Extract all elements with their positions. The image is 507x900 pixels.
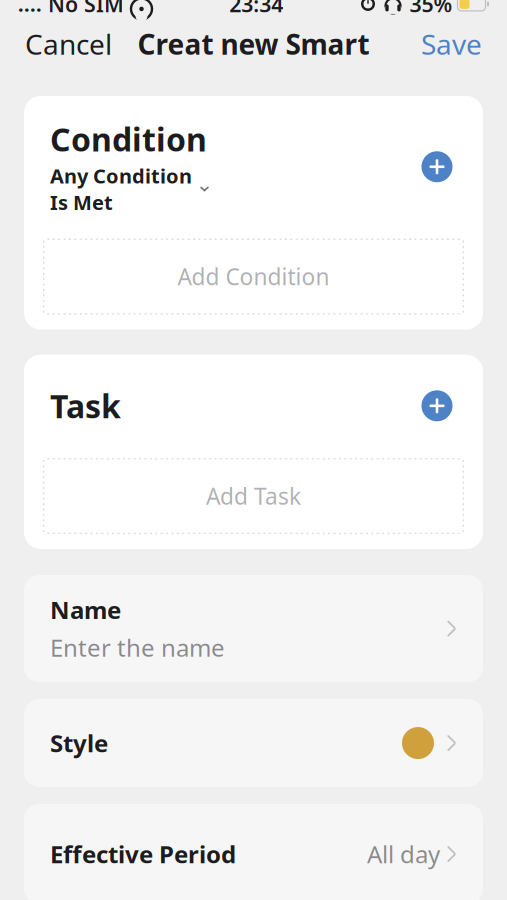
staticText: Add Task xyxy=(206,481,301,511)
staticText: No SIM xyxy=(48,0,124,18)
button[interactable]: Save xyxy=(401,15,502,73)
staticText: Effective Period xyxy=(50,838,236,870)
staticText: Condition xyxy=(50,118,207,160)
button[interactable]: Cancel xyxy=(5,15,132,73)
staticText: Style xyxy=(50,727,108,759)
staticText: Any Condition Is Met xyxy=(50,162,192,215)
staticText: Add Condition xyxy=(177,261,329,292)
staticText: Enter the name xyxy=(50,632,225,663)
staticText: 23:34 xyxy=(229,0,283,18)
button[interactable]: Add condition xyxy=(417,147,457,187)
staticText: Creat new Smart xyxy=(137,25,369,63)
staticText: All day xyxy=(367,838,440,870)
button[interactable]: Add Task xyxy=(43,458,464,534)
button[interactable]: Any Condition Is Met xyxy=(50,162,233,215)
staticText: Name xyxy=(50,594,121,626)
button[interactable]: Effective Period xyxy=(24,804,483,900)
staticText: Save xyxy=(421,25,482,63)
staticText: Cancel xyxy=(25,25,112,63)
staticText: Task xyxy=(50,385,121,427)
button[interactable]: Add task xyxy=(417,386,457,426)
button[interactable]: Add Condition xyxy=(43,239,464,315)
button[interactable]: Name xyxy=(24,575,483,682)
button[interactable]: Style xyxy=(24,699,483,787)
staticText: 35% xyxy=(409,0,452,18)
staticText: .... xyxy=(18,0,42,17)
